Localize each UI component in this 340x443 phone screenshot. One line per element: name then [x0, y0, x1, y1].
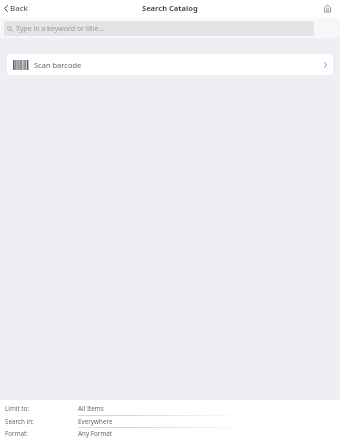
staticText: Type in a keyword or title... — [16, 24, 105, 34]
staticText: Search in: — [5, 417, 34, 426]
button[interactable]: Format: — [0, 427, 340, 439]
button[interactable]: Back — [0, 0, 32, 16]
button[interactable]: Search in: — [0, 415, 340, 428]
staticText: Scan barcode — [34, 60, 82, 70]
staticText: Everywhere — [78, 417, 113, 426]
staticText: Back — [10, 3, 28, 14]
staticText: Format: — [5, 429, 29, 438]
staticText: Search Catalog — [142, 3, 198, 13]
staticText: Limit to: — [5, 404, 30, 413]
button[interactable]: Type in a keyword or title... — [4, 21, 314, 36]
staticText: Any Format — [78, 429, 113, 438]
button[interactable]: Scan barcode — [7, 54, 333, 75]
button[interactable]: Limit to: — [0, 400, 340, 416]
button[interactable]: Home — [324, 0, 340, 16]
staticText: All Items — [78, 404, 104, 413]
